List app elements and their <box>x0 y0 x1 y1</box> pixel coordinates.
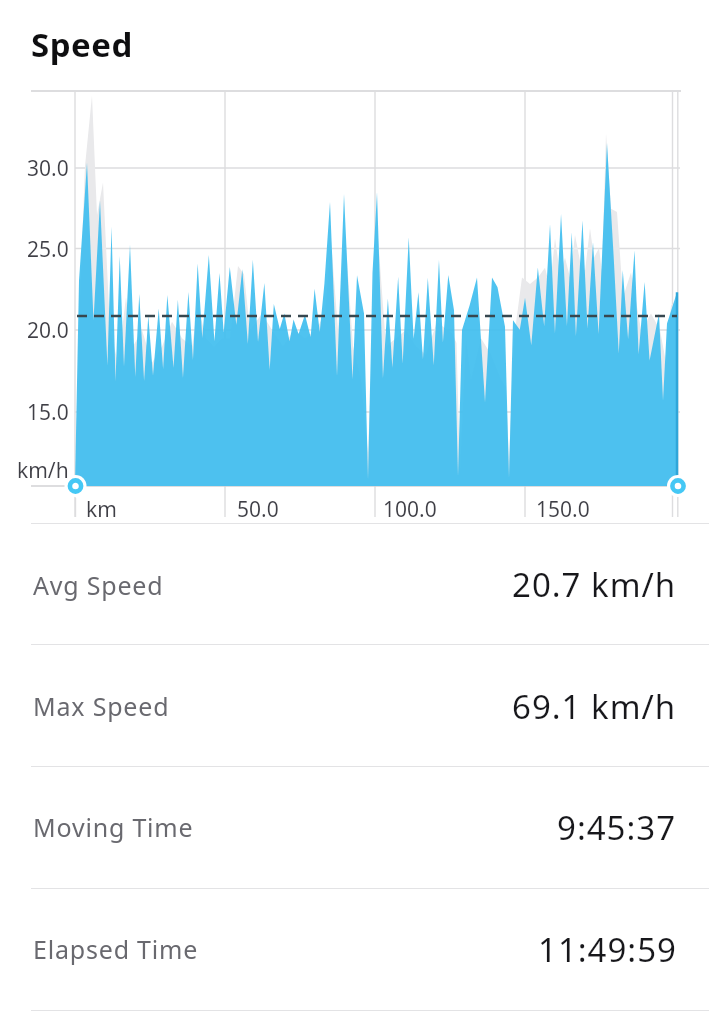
staticText: Max Speed <box>33 689 170 723</box>
staticText: 50.0 <box>237 495 279 521</box>
staticText: 20.0 <box>27 316 69 344</box>
button[interactable]: Elapsed Time <box>0 888 709 1010</box>
staticText: 11:49:59 <box>538 927 677 972</box>
button[interactable]: Avg Speed <box>0 524 709 645</box>
button[interactable]: Moving Time <box>0 766 709 888</box>
button[interactable] <box>658 466 698 506</box>
staticText: 9:45:37 <box>557 805 677 850</box>
staticText: 20.7 km/h <box>512 562 677 607</box>
button[interactable]: Max Speed <box>0 645 709 767</box>
staticText: Elapsed Time <box>33 932 199 966</box>
button[interactable] <box>56 466 96 506</box>
staticText: 25.0 <box>27 235 69 263</box>
staticText: 150.0 <box>536 495 590 521</box>
staticText: 15.0 <box>27 398 69 426</box>
staticText: 69.1 km/h <box>512 684 677 729</box>
staticText: Avg Speed <box>33 568 164 602</box>
staticText: Moving Time <box>33 810 194 844</box>
staticText: Speed <box>31 22 133 67</box>
staticText: km <box>86 495 117 521</box>
staticText: 30.0 <box>27 154 69 182</box>
staticText: 100.0 <box>383 495 437 521</box>
staticText: km/h <box>17 456 69 484</box>
